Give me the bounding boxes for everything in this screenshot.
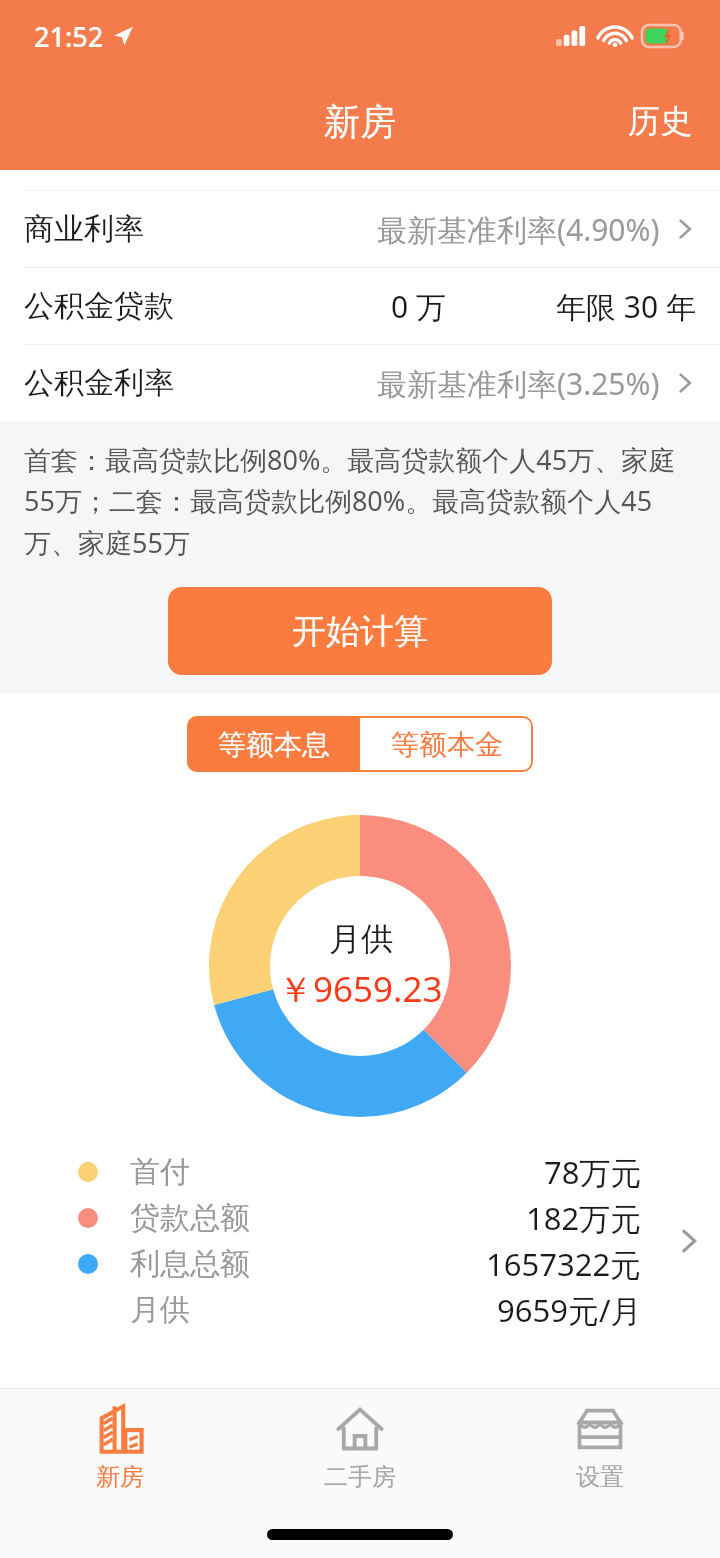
staticText: 首付 [130, 1153, 190, 1191]
staticText: 最新基准利率(3.25%) [377, 363, 660, 404]
staticText: 0 万 [391, 286, 446, 327]
button[interactable]: 首付 [0, 1149, 720, 1333]
staticText: 利息总额 [130, 1245, 250, 1283]
staticText: 9659元/月 [497, 1289, 642, 1331]
other: 二手房 [333, 1402, 387, 1456]
button[interactable]: 公积金利率 [0, 345, 720, 421]
staticText: 贷款总额 [130, 1199, 250, 1237]
button[interactable]: 等额本金 [360, 716, 533, 772]
staticText: ￥9659.23 [278, 965, 443, 1013]
staticText: 月供 [329, 919, 393, 959]
staticText: 月供 [130, 1291, 190, 1329]
button[interactable]: 公积金贷款 [0, 268, 720, 344]
staticText: 开始计算 [292, 610, 428, 653]
other: 设置 [573, 1402, 627, 1456]
button[interactable]: 开始计算 [168, 587, 552, 675]
staticText: 历史 [628, 101, 692, 141]
staticText: 新房 [96, 1462, 144, 1492]
staticText: 新房 [324, 99, 396, 144]
button[interactable]: 历史 [600, 83, 720, 159]
button[interactable]: 二手房 [240, 1388, 480, 1508]
button[interactable]: 商业利率 [0, 191, 720, 267]
staticText: 最新基准利率(4.90%) [377, 209, 660, 250]
staticText: 1657322元 [486, 1243, 642, 1285]
staticText: 等额本金 [391, 727, 503, 762]
staticText: 公积金利率 [24, 364, 174, 402]
staticText: 年限 30 年 [556, 286, 696, 327]
staticText: 设置 [576, 1462, 624, 1492]
staticText: 公积金贷款 [24, 287, 174, 325]
staticText: 等额本息 [218, 727, 330, 762]
other: 新房 [93, 1402, 147, 1456]
staticText: 商业利率 [24, 210, 144, 248]
staticText: 21:52 [34, 18, 104, 55]
staticText: 78万元 [544, 1151, 642, 1193]
staticText: 182万元 [526, 1197, 642, 1239]
button[interactable]: 新房 [0, 1388, 240, 1508]
staticText: 二手房 [324, 1462, 396, 1492]
button[interactable]: 等额本息 [187, 716, 360, 772]
staticText: 首套：最高贷款比例80%。最高贷款额个人45万、家庭55万；二套：最高贷款比例8… [24, 441, 696, 561]
button[interactable]: 设置 [480, 1388, 720, 1508]
